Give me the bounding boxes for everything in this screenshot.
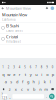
staticText: a	[5, 79, 7, 84]
button[interactable]: k	[42, 78, 47, 85]
staticText: ,	[9, 94, 10, 99]
button[interactable]: 2	[6, 64, 12, 71]
staticText: v	[27, 86, 29, 92]
staticText: e	[13, 72, 15, 77]
staticText: y	[30, 72, 32, 77]
staticText: n	[39, 86, 41, 92]
staticText: California	[2, 18, 15, 21]
button[interactable]: 4	[17, 64, 22, 71]
button[interactable]: r	[17, 71, 22, 78]
staticText: 8	[41, 65, 43, 69]
button[interactable]: Cristal	[0, 33, 56, 44]
button[interactable]: n	[37, 85, 43, 93]
button[interactable]: Mountain View	[0, 11, 56, 22]
staticText: 4	[19, 65, 21, 69]
staticText: ?123	[1, 93, 7, 100]
staticText: i	[41, 72, 42, 77]
staticText: p	[52, 72, 54, 77]
staticText: k	[44, 79, 46, 84]
staticText: Cristal	[6, 34, 18, 39]
button[interactable]: m	[43, 85, 49, 93]
button[interactable]: 7	[33, 64, 39, 71]
button[interactable]: y	[28, 71, 33, 78]
button[interactable]: g	[25, 78, 31, 85]
button[interactable]: ?123	[1, 94, 7, 99]
button[interactable]: 9	[44, 64, 50, 71]
staticText: g	[27, 79, 29, 84]
staticText: 6	[30, 65, 32, 69]
button[interactable]: 6	[28, 64, 33, 71]
button[interactable]: 3	[12, 64, 17, 71]
button[interactable]: f	[20, 78, 25, 85]
button[interactable]: o	[44, 71, 50, 78]
staticText: f	[22, 79, 23, 84]
button[interactable]: ,	[8, 94, 11, 99]
button[interactable]: c	[19, 85, 25, 93]
button[interactable]: w	[6, 71, 12, 78]
staticText: El Sushi	[6, 23, 19, 28]
button[interactable]: p	[50, 71, 55, 78]
staticText: 2	[8, 65, 10, 69]
staticText: r	[19, 72, 21, 77]
button[interactable]: e	[12, 71, 17, 78]
staticText: Mountain View	[6, 6, 31, 11]
button[interactable]: d	[14, 78, 20, 85]
staticText: w	[7, 72, 10, 77]
button[interactable]: b	[31, 85, 37, 93]
button[interactable]: Delete	[49, 86, 55, 93]
staticText: 7	[35, 65, 37, 69]
staticText: c	[21, 86, 23, 92]
button[interactable]: a	[3, 78, 9, 85]
button[interactable]: 0	[50, 64, 55, 71]
staticText: d	[16, 79, 18, 84]
staticText: u	[35, 72, 37, 77]
button[interactable]: l	[47, 78, 53, 85]
button[interactable]: u	[33, 71, 39, 78]
button[interactable]: q	[1, 71, 6, 78]
staticText: Castro Street	[6, 29, 23, 32]
button[interactable]: v	[25, 85, 31, 93]
staticText: j	[39, 79, 40, 84]
staticText: l	[50, 79, 51, 84]
staticText: 5	[24, 65, 26, 69]
button[interactable]: Account	[49, 6, 55, 10]
staticText: .	[46, 94, 47, 99]
staticText: q	[2, 72, 4, 77]
button[interactable]: z	[7, 85, 13, 93]
staticText: Villa Street	[6, 40, 21, 43]
button[interactable]: El Sushi	[0, 22, 56, 33]
staticText: m	[44, 86, 48, 92]
button[interactable]: Back	[0, 7, 6, 10]
staticText: 9	[46, 65, 48, 69]
button[interactable]: Shift	[1, 86, 7, 93]
button[interactable]: 5	[22, 64, 28, 71]
button[interactable]: Search	[49, 94, 55, 99]
button[interactable]: x	[13, 85, 19, 93]
button[interactable]: t	[22, 71, 28, 78]
staticText: z	[9, 86, 11, 92]
button[interactable]: Voice search	[44, 7, 49, 10]
staticText: b	[33, 86, 35, 92]
staticText: o	[46, 72, 48, 77]
staticText: 1	[2, 65, 4, 69]
staticText: 3	[13, 65, 15, 69]
staticText: 0	[52, 65, 54, 69]
button[interactable]: h	[31, 78, 36, 85]
button[interactable]: 1	[1, 64, 6, 71]
staticText: x	[15, 86, 17, 92]
button[interactable]: .	[45, 94, 48, 99]
button[interactable]: 8	[39, 64, 44, 71]
staticText: Mountain View	[2, 12, 27, 17]
staticText: s	[10, 79, 12, 84]
button[interactable]: s	[9, 78, 14, 85]
button[interactable]: j	[36, 78, 42, 85]
staticText: t	[25, 72, 26, 77]
button[interactable]: i	[39, 71, 44, 78]
staticText: h	[33, 79, 35, 84]
